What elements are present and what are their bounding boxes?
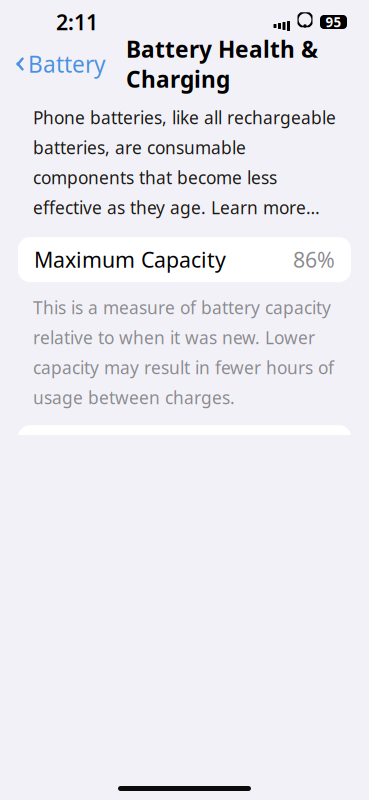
staticText: To reduce battery aging, iPhone learns f…	[33, 702, 329, 800]
staticText: Battery	[28, 49, 106, 79]
button[interactable]: Peak Performance Capability	[18, 425, 351, 470]
staticText: 95	[325, 13, 341, 31]
staticText: 2:11	[56, 8, 98, 36]
staticText: This is a measure of battery capacity re…	[33, 296, 334, 409]
button[interactable]: Maximum Capacity	[18, 237, 351, 282]
staticText: Battery Health & Charging	[126, 34, 318, 94]
button[interactable]: Battery	[0, 43, 106, 85]
staticText: Maximum Capacity	[34, 245, 226, 274]
staticText: 86%	[293, 245, 335, 274]
staticText: Phone batteries, like all rechargeable b…	[33, 106, 336, 219]
